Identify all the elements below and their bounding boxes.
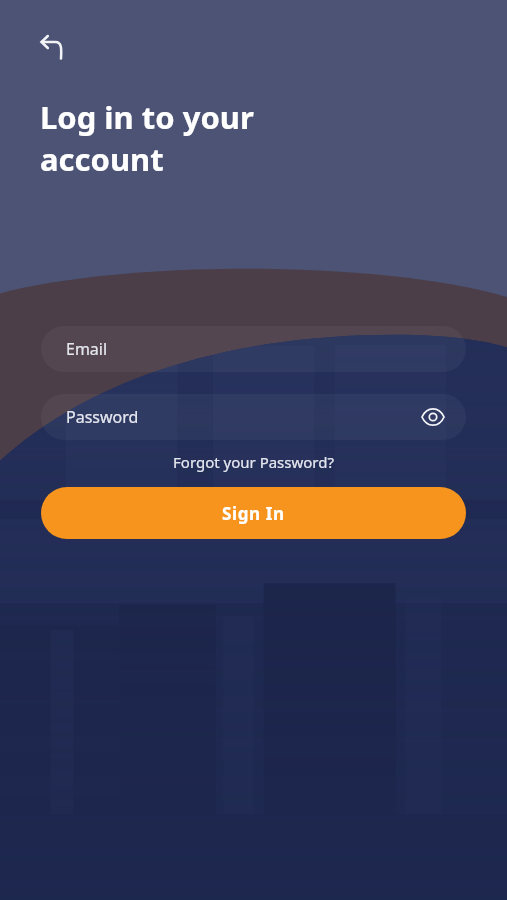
staticText: Forgot your Password? <box>173 452 334 472</box>
button[interactable]: Email <box>41 326 466 372</box>
staticText: Password <box>66 406 139 428</box>
button[interactable]: Sign In <box>41 487 466 539</box>
button[interactable]: Back <box>28 24 76 72</box>
staticText: Log in to your account <box>40 96 254 180</box>
staticText: Email <box>66 338 108 360</box>
button[interactable]: Password <box>41 394 466 440</box>
button[interactable]: Forgot your Password? <box>40 448 467 476</box>
button[interactable]: Show password <box>418 402 448 432</box>
staticText: Sign In <box>222 502 285 525</box>
